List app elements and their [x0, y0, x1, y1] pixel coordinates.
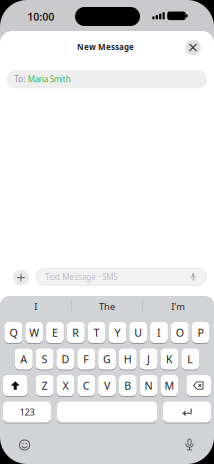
- button[interactable]: Z: [36, 374, 53, 396]
- staticText: M: [164, 378, 174, 393]
- button[interactable]: I: [3, 297, 69, 315]
- staticText: W: [29, 325, 39, 340]
- staticText: L: [187, 352, 193, 366]
- staticText: 10:00: [27, 9, 54, 24]
- button[interactable]: P: [192, 321, 209, 343]
- button[interactable]: N: [140, 374, 157, 396]
- button[interactable]: K: [160, 348, 178, 370]
- button[interactable]: B: [119, 374, 137, 396]
- button[interactable]: To:: [7, 70, 207, 88]
- staticText: New Message: [77, 42, 134, 52]
- button[interactable]: Add attachment: [13, 270, 29, 285]
- staticText: X: [62, 378, 68, 393]
- staticText: I'm: [171, 300, 185, 313]
- button[interactable]: Return: [163, 401, 211, 423]
- staticText: E: [52, 325, 58, 340]
- button[interactable]: C: [77, 374, 95, 396]
- button[interactable]: R: [67, 321, 85, 343]
- staticText: U: [134, 325, 142, 340]
- button[interactable]: A: [15, 348, 33, 370]
- button[interactable]: I'm: [145, 297, 211, 315]
- staticText: S: [42, 352, 48, 366]
- staticText: A: [20, 352, 27, 366]
- button[interactable]: Shift: [3, 374, 27, 396]
- button[interactable]: V: [98, 374, 116, 396]
- staticText: I: [157, 325, 161, 340]
- staticText: Y: [114, 325, 120, 340]
- staticText: V: [104, 378, 110, 393]
- button[interactable]: M: [160, 374, 178, 396]
- staticText: F: [83, 352, 89, 366]
- staticText: Z: [42, 378, 48, 393]
- button[interactable]: The: [74, 297, 140, 315]
- staticText: P: [198, 325, 204, 340]
- button[interactable]: W: [25, 321, 43, 343]
- staticText: Text Message · SMS: [45, 272, 117, 282]
- button[interactable]: S: [36, 348, 53, 370]
- staticText: K: [166, 352, 173, 366]
- button[interactable]: G: [98, 348, 116, 370]
- button[interactable]: J: [140, 348, 157, 370]
- staticText: J: [147, 352, 150, 366]
- staticText: T: [94, 325, 100, 340]
- staticText: B: [124, 378, 131, 393]
- button[interactable]: Emoji: [19, 439, 30, 450]
- staticText: Q: [9, 325, 17, 340]
- button[interactable]: T: [88, 321, 105, 343]
- button[interactable]: Dictation: [185, 439, 194, 451]
- button[interactable]: Q: [4, 321, 22, 343]
- staticText: The: [99, 300, 115, 313]
- staticText: O: [176, 325, 184, 340]
- button[interactable]: Close: [185, 40, 201, 55]
- button[interactable]: Text Message SMS field: [36, 268, 207, 286]
- staticText: 123: [19, 406, 34, 418]
- staticText: R: [72, 325, 79, 340]
- button[interactable]: 123: [3, 401, 51, 423]
- button[interactable]: F: [77, 348, 95, 370]
- staticText: Maria Smith: [28, 74, 71, 84]
- button[interactable]: D: [56, 348, 74, 370]
- staticText: G: [103, 352, 111, 366]
- staticText: I: [34, 300, 37, 313]
- staticText: To:: [14, 74, 25, 84]
- button[interactable]: L: [181, 348, 199, 370]
- button[interactable]: O: [171, 321, 189, 343]
- button[interactable]: Space: [57, 401, 157, 423]
- button[interactable]: H: [119, 348, 137, 370]
- button[interactable]: E: [46, 321, 64, 343]
- staticText: C: [83, 378, 90, 393]
- button[interactable]: I: [150, 321, 168, 343]
- button[interactable]: Delete: [186, 374, 211, 396]
- button[interactable]: X: [56, 374, 74, 396]
- staticText: H: [124, 352, 132, 366]
- button[interactable]: U: [129, 321, 147, 343]
- staticText: D: [61, 352, 69, 366]
- button[interactable]: Y: [108, 321, 126, 343]
- staticText: N: [145, 378, 153, 393]
